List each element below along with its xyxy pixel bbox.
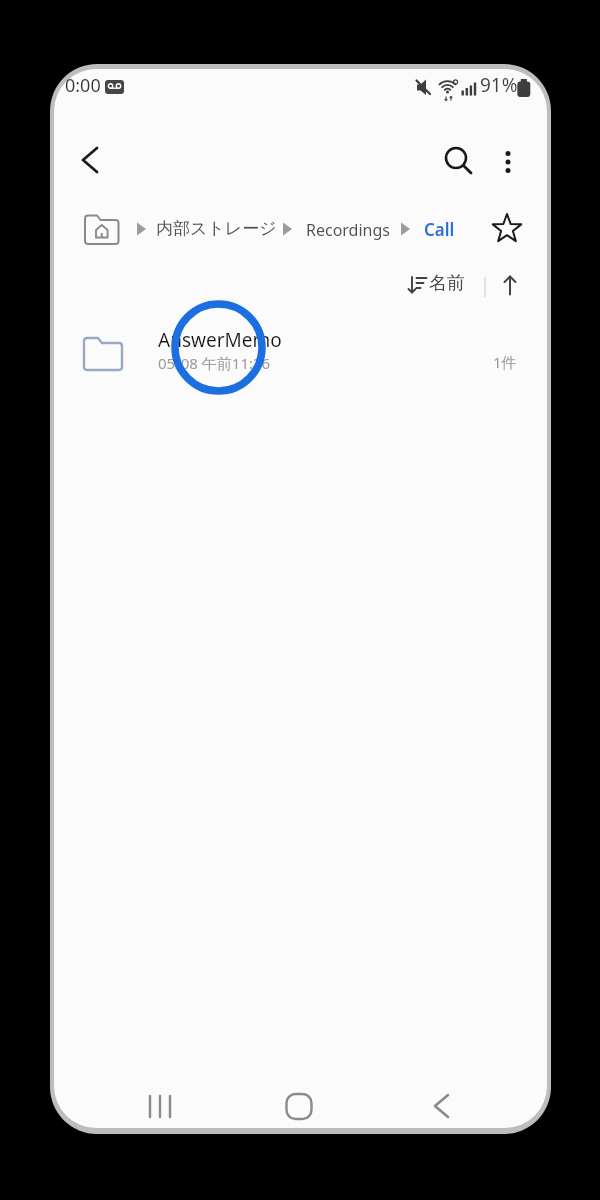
button[interactable] <box>69 144 111 186</box>
button[interactable] <box>493 268 527 302</box>
button[interactable] <box>259 1080 339 1128</box>
button[interactable] <box>126 1080 206 1128</box>
button[interactable]: Recordings <box>306 219 390 241</box>
staticText: 05/08 午前11:36 <box>158 353 271 373</box>
staticText: 91% <box>480 72 518 98</box>
staticText: 0:00 <box>65 73 101 98</box>
button[interactable]: 内部ストレージ <box>156 218 277 239</box>
button[interactable] <box>396 1080 476 1128</box>
staticText: 名前 <box>429 272 465 295</box>
button[interactable]: 名前 <box>400 268 486 302</box>
button[interactable] <box>83 210 123 250</box>
button[interactable]: Call <box>424 218 455 241</box>
button[interactable]: AnswerMemo <box>56 320 543 384</box>
staticText: 1件 <box>493 352 517 372</box>
button[interactable] <box>440 144 480 184</box>
button[interactable] <box>492 144 526 188</box>
staticText: AnswerMemo <box>158 327 282 353</box>
button[interactable] <box>487 209 527 249</box>
